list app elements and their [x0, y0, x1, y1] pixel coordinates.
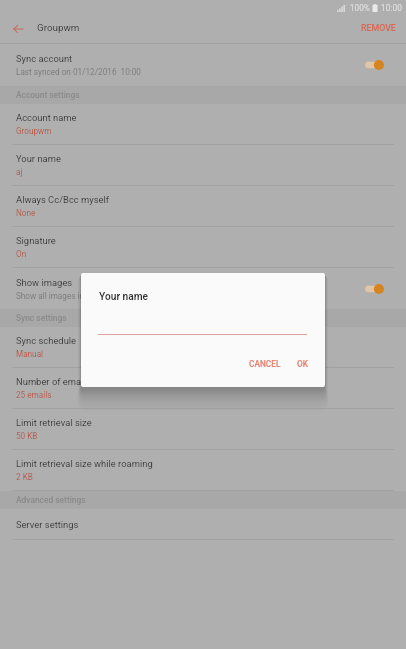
staticText: Groupwm — [37, 22, 80, 33]
staticText: Manual — [16, 349, 44, 359]
button[interactable]: Limit retrieval size — [0, 409, 406, 450]
staticText: Server settings — [16, 519, 79, 530]
staticText: On — [16, 249, 27, 259]
button[interactable]: Server settings — [0, 509, 406, 540]
button[interactable]: Navigate up — [2, 16, 34, 42]
button[interactable]: Your name — [0, 145, 406, 186]
staticText: aj — [16, 167, 23, 177]
button[interactable]: Show images — [0, 268, 406, 309]
staticText: Signature — [16, 235, 56, 246]
staticText: Sync account — [16, 53, 73, 64]
button[interactable]: Limit retrieval size while roaming — [0, 450, 406, 491]
staticText: 100% — [350, 3, 370, 13]
staticText: Limit retrieval size while roaming — [16, 458, 153, 469]
staticText: Sync schedule — [16, 335, 77, 346]
staticText: 10:00 — [381, 3, 402, 13]
button[interactable]: Signature — [0, 227, 406, 268]
staticText: Account name — [16, 112, 77, 123]
staticText: Number of emails to sync — [16, 376, 123, 387]
staticText: 50 KB — [16, 431, 38, 441]
staticText: Last synced on 01/12/2016 10:00 — [16, 67, 141, 77]
button[interactable]: Account name — [0, 104, 406, 145]
button[interactable]: REMOVE — [350, 15, 406, 40]
staticText: Show images — [16, 277, 73, 288]
button[interactable]: Toggle — [365, 282, 384, 296]
staticText: REMOVE — [361, 23, 396, 33]
staticText: 2 KB — [16, 472, 33, 482]
staticText: Sync settings — [16, 313, 67, 323]
staticText: Your name — [99, 291, 149, 303]
staticText: OK — [297, 359, 308, 369]
button[interactable]: Always Cc/Bcc myself — [0, 186, 406, 227]
staticText: Advanced settings — [16, 495, 86, 505]
staticText: None — [16, 208, 36, 218]
staticText: 25 emails — [16, 390, 52, 400]
staticText: Groupwm — [16, 126, 52, 136]
staticText: CANCEL — [249, 359, 281, 369]
button[interactable]: OK — [289, 354, 316, 374]
staticText: Your name — [16, 153, 61, 164]
staticText: Limit retrieval size — [16, 417, 92, 428]
staticText: Always Cc/Bcc myself — [16, 194, 110, 205]
button[interactable]: Sync schedule — [0, 327, 406, 368]
button[interactable]: Toggle — [365, 58, 384, 72]
button[interactable]: CANCEL — [241, 354, 289, 374]
button[interactable]: Sync account — [0, 44, 406, 86]
button[interactable]: Number of emails to sync — [0, 368, 406, 409]
staticText: Account settings — [16, 90, 80, 100]
staticText: Show all images in emails — [16, 291, 111, 301]
